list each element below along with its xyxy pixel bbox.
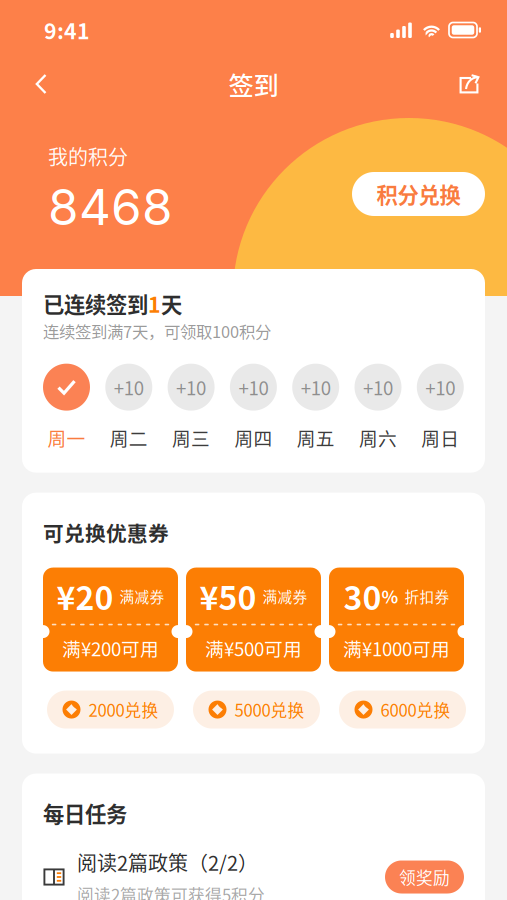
staticText: 天 bbox=[161, 288, 182, 319]
staticText: 周一 bbox=[47, 424, 85, 451]
button[interactable]: 5000兑换 bbox=[193, 691, 320, 729]
staticText: ¥20 bbox=[56, 573, 113, 619]
button[interactable]: Back bbox=[35, 62, 81, 106]
button[interactable]: Share bbox=[433, 62, 479, 106]
staticText: 可兑换优惠券 bbox=[43, 518, 169, 547]
staticText: 阅读2篇政策可获得5积分 bbox=[77, 882, 265, 900]
button[interactable]: +10 bbox=[292, 364, 339, 449]
staticText: 周二 bbox=[110, 424, 148, 451]
staticText: +10 bbox=[176, 374, 206, 401]
staticText: 5000兑换 bbox=[234, 697, 304, 722]
button[interactable]: +10 bbox=[354, 364, 401, 449]
button[interactable]: 周一 bbox=[43, 364, 90, 449]
staticText: +10 bbox=[301, 374, 331, 401]
staticText: +10 bbox=[114, 374, 144, 401]
button[interactable]: 领奖励 bbox=[385, 860, 464, 893]
staticText: 连续签到满7天，可领取100积分 bbox=[43, 319, 271, 343]
staticText: 积分兑换 bbox=[376, 179, 460, 209]
staticText: 周三 bbox=[172, 424, 210, 451]
staticText: 每日任务 bbox=[43, 798, 127, 828]
staticText: 30 bbox=[343, 573, 381, 619]
staticText: 签到 bbox=[228, 66, 278, 102]
button[interactable]: +10 bbox=[168, 364, 215, 449]
button[interactable]: ¥20 bbox=[43, 568, 178, 672]
staticText: 满¥1000可用 bbox=[343, 634, 450, 661]
staticText: 我的积分 bbox=[48, 141, 128, 170]
staticText: ¥50 bbox=[199, 573, 256, 619]
staticText: 周日 bbox=[421, 424, 459, 451]
button[interactable]: 2000兑换 bbox=[47, 691, 174, 729]
button[interactable]: 30 bbox=[329, 568, 464, 672]
button[interactable]: 积分兑换 bbox=[352, 172, 485, 216]
button[interactable]: +10 bbox=[417, 364, 464, 449]
button[interactable]: 6000兑换 bbox=[339, 691, 466, 729]
staticText: 周五 bbox=[297, 424, 335, 451]
staticText: 领奖励 bbox=[399, 865, 450, 889]
staticText: 9:41 bbox=[44, 15, 90, 45]
staticText: 1 bbox=[148, 288, 161, 319]
staticText: 周四 bbox=[234, 424, 272, 451]
button[interactable]: +10 bbox=[230, 364, 277, 449]
button[interactable]: +10 bbox=[105, 364, 152, 449]
staticText: 满¥200可用 bbox=[62, 634, 159, 661]
staticText: 满减券 bbox=[113, 585, 164, 607]
staticText: 满减券 bbox=[256, 585, 307, 607]
staticText: 周六 bbox=[359, 424, 397, 451]
button[interactable]: ¥50 bbox=[186, 568, 321, 672]
staticText: % bbox=[381, 583, 398, 609]
staticText: +10 bbox=[363, 374, 393, 401]
staticText: +10 bbox=[238, 374, 268, 401]
staticText: 阅读2篇政策（2/2） bbox=[77, 847, 258, 876]
staticText: 2000兑换 bbox=[88, 697, 158, 722]
staticText: 已连续签到 bbox=[43, 288, 148, 319]
staticText: 满¥500可用 bbox=[205, 634, 302, 661]
staticText: 8468 bbox=[48, 177, 173, 237]
staticText: 6000兑换 bbox=[380, 697, 450, 722]
staticText: 折扣券 bbox=[398, 585, 449, 607]
staticText: +10 bbox=[425, 374, 455, 401]
